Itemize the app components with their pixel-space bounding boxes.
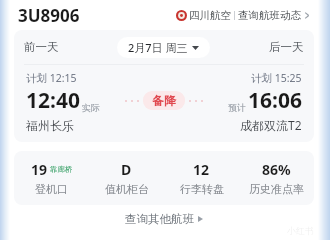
staticText: 计划 15:25 xyxy=(251,71,302,85)
staticText: 值机柜台 xyxy=(105,182,149,196)
staticText: 福州长乐 xyxy=(26,118,74,133)
staticText: 靠廊桥 xyxy=(50,165,73,174)
staticText: 12 xyxy=(193,160,210,179)
button[interactable]: 后一天 xyxy=(269,40,304,54)
staticText: D xyxy=(121,160,132,179)
staticText: 计划 12:15 xyxy=(26,71,77,85)
staticText: 查询航班动态 xyxy=(238,9,301,22)
button[interactable]: 12 xyxy=(164,160,239,196)
staticText: 查询其他航班 xyxy=(125,212,194,226)
staticText: 历史准点率 xyxy=(249,182,304,196)
staticText: 12:40 xyxy=(26,86,80,115)
button[interactable]: 前一天 xyxy=(24,40,59,54)
button[interactable]: D xyxy=(89,160,164,196)
staticText: 3U8906 xyxy=(18,4,80,27)
staticText: 小红书 xyxy=(287,225,314,236)
staticText: 19 xyxy=(31,160,48,179)
button[interactable]: 2月7日 周三 xyxy=(128,40,199,55)
staticText: 2月7日 周三 xyxy=(128,40,188,55)
staticText: 成都双流T2 xyxy=(240,117,302,133)
staticText: 登机口 xyxy=(35,182,68,196)
staticText: 86% xyxy=(262,160,291,179)
staticText: 实际 xyxy=(82,102,100,113)
button[interactable]: 19 xyxy=(14,160,89,196)
button[interactable]: 四川航空 xyxy=(176,9,310,22)
staticText: 备降 xyxy=(152,93,176,108)
staticText: 16:06 xyxy=(248,86,302,115)
staticText: 四川航空 xyxy=(189,9,231,22)
button[interactable]: 查询其他航班 xyxy=(121,208,207,230)
staticText: 预计 xyxy=(228,102,246,113)
staticText: 行李转盘 xyxy=(180,182,224,196)
button[interactable]: 86% xyxy=(239,160,314,196)
